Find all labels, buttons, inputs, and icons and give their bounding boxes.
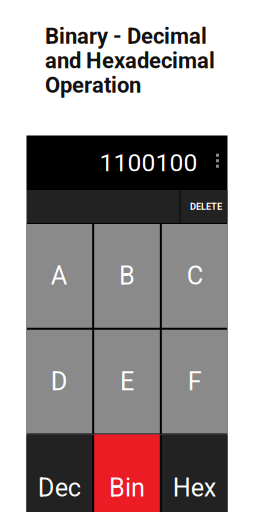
staticText: DELETE bbox=[190, 201, 222, 212]
staticText: Binary - Decimal bbox=[45, 23, 207, 49]
staticText: D bbox=[51, 367, 68, 396]
staticText: Hex bbox=[173, 473, 217, 503]
button[interactable]: Dec bbox=[26, 434, 92, 512]
staticText: E bbox=[120, 367, 134, 396]
button[interactable]: F bbox=[162, 330, 227, 434]
button[interactable]: B bbox=[94, 224, 160, 328]
button[interactable]: D bbox=[26, 330, 92, 434]
button[interactable]: E bbox=[94, 330, 160, 434]
staticText: Operation bbox=[45, 72, 141, 98]
staticText: F bbox=[188, 367, 202, 396]
button[interactable]: Hex bbox=[162, 434, 227, 512]
button[interactable]: More options bbox=[209, 148, 225, 173]
staticText: A bbox=[51, 261, 68, 291]
button[interactable]: DELETE bbox=[180, 190, 227, 223]
staticText: B bbox=[119, 261, 135, 291]
button[interactable]: A bbox=[26, 224, 92, 328]
staticText: C bbox=[187, 261, 203, 291]
staticText: Bin bbox=[109, 473, 145, 503]
button[interactable]: Bin bbox=[94, 434, 160, 512]
staticText: Dec bbox=[38, 473, 81, 503]
staticText: and Hexadecimal bbox=[45, 48, 215, 74]
staticText: 1100100 bbox=[99, 148, 197, 177]
button[interactable]: C bbox=[162, 224, 227, 328]
